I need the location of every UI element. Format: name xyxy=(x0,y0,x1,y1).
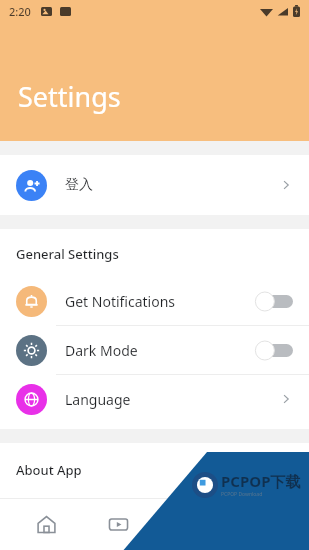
button[interactable]: Get Notifications toggle xyxy=(255,292,293,311)
button[interactable]: About App xyxy=(0,459,309,487)
button[interactable]: Home xyxy=(19,498,73,550)
staticText: Dark Mode xyxy=(65,341,138,360)
button[interactable]: Language xyxy=(0,375,309,423)
button[interactable]: Search xyxy=(164,498,218,550)
button[interactable]: Get Notifications xyxy=(0,277,309,325)
staticText: PCPOP Download xyxy=(221,491,263,498)
staticText: 登入 xyxy=(65,176,93,194)
button[interactable]: 登入 xyxy=(0,155,309,215)
staticText: Language xyxy=(65,390,131,409)
button[interactable]: Dark Mode xyxy=(0,326,309,374)
staticText: About App xyxy=(16,461,82,479)
staticText: 2:20 xyxy=(9,4,31,19)
staticText: PCPOP下载 xyxy=(221,471,301,491)
staticText: Settings xyxy=(18,78,121,115)
button[interactable]: Videos xyxy=(91,498,145,550)
staticText: Get Notifications xyxy=(65,292,176,311)
button[interactable]: Dark Mode toggle xyxy=(255,341,293,360)
staticText: General Settings xyxy=(16,245,119,263)
